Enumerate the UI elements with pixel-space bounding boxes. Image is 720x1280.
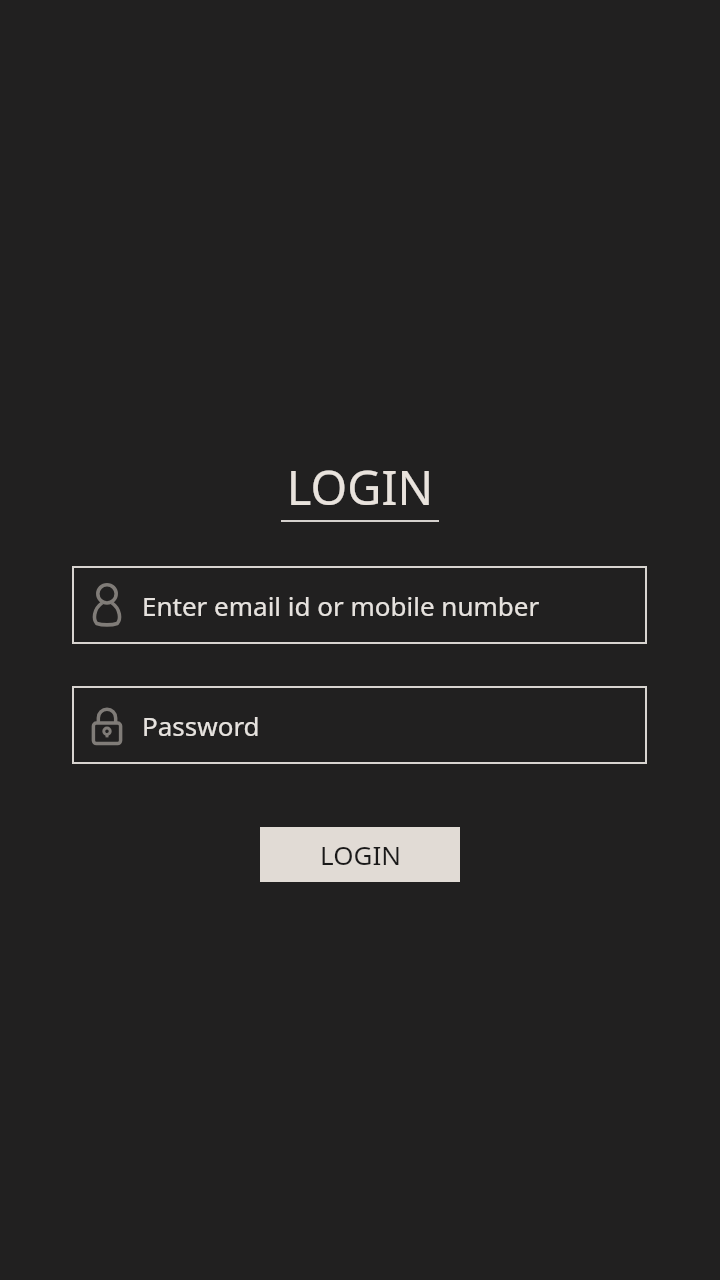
staticText: Password bbox=[142, 708, 260, 743]
staticText: LOGIN bbox=[320, 837, 401, 872]
other: Password bbox=[85, 703, 129, 747]
staticText: Enter email id or mobile number bbox=[142, 588, 540, 623]
button[interactable]: Password bbox=[72, 686, 647, 764]
other: Account bbox=[85, 583, 129, 627]
button[interactable]: Account bbox=[72, 566, 647, 644]
button[interactable]: LOGIN bbox=[260, 827, 460, 882]
staticText: LOGIN bbox=[0, 455, 720, 519]
